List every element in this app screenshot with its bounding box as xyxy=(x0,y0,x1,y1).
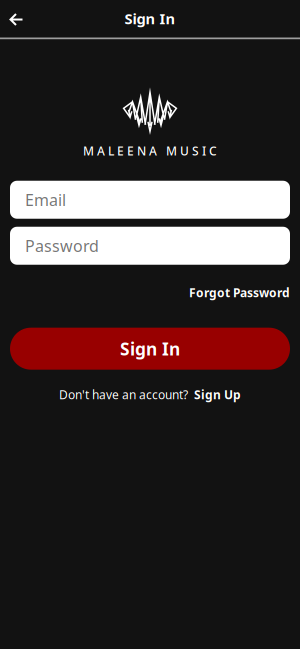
staticText: Don't have an account? xyxy=(59,387,188,403)
button[interactable] xyxy=(0,10,24,26)
button[interactable]: Sign In xyxy=(10,328,290,370)
staticText: Sign In xyxy=(124,9,175,28)
staticText: Password xyxy=(25,235,99,256)
staticText: Forgot Password xyxy=(189,285,290,301)
button[interactable]: Password xyxy=(10,227,290,265)
button[interactable]: Email xyxy=(10,181,290,219)
staticText: Sign Up xyxy=(194,387,241,403)
button[interactable]: Sign Up xyxy=(194,387,241,403)
staticText: Sign In xyxy=(120,337,180,360)
staticText: M A L E E N A M U S I C xyxy=(83,143,217,159)
staticText: Email xyxy=(25,189,66,210)
button[interactable]: Forgot Password xyxy=(189,285,290,301)
